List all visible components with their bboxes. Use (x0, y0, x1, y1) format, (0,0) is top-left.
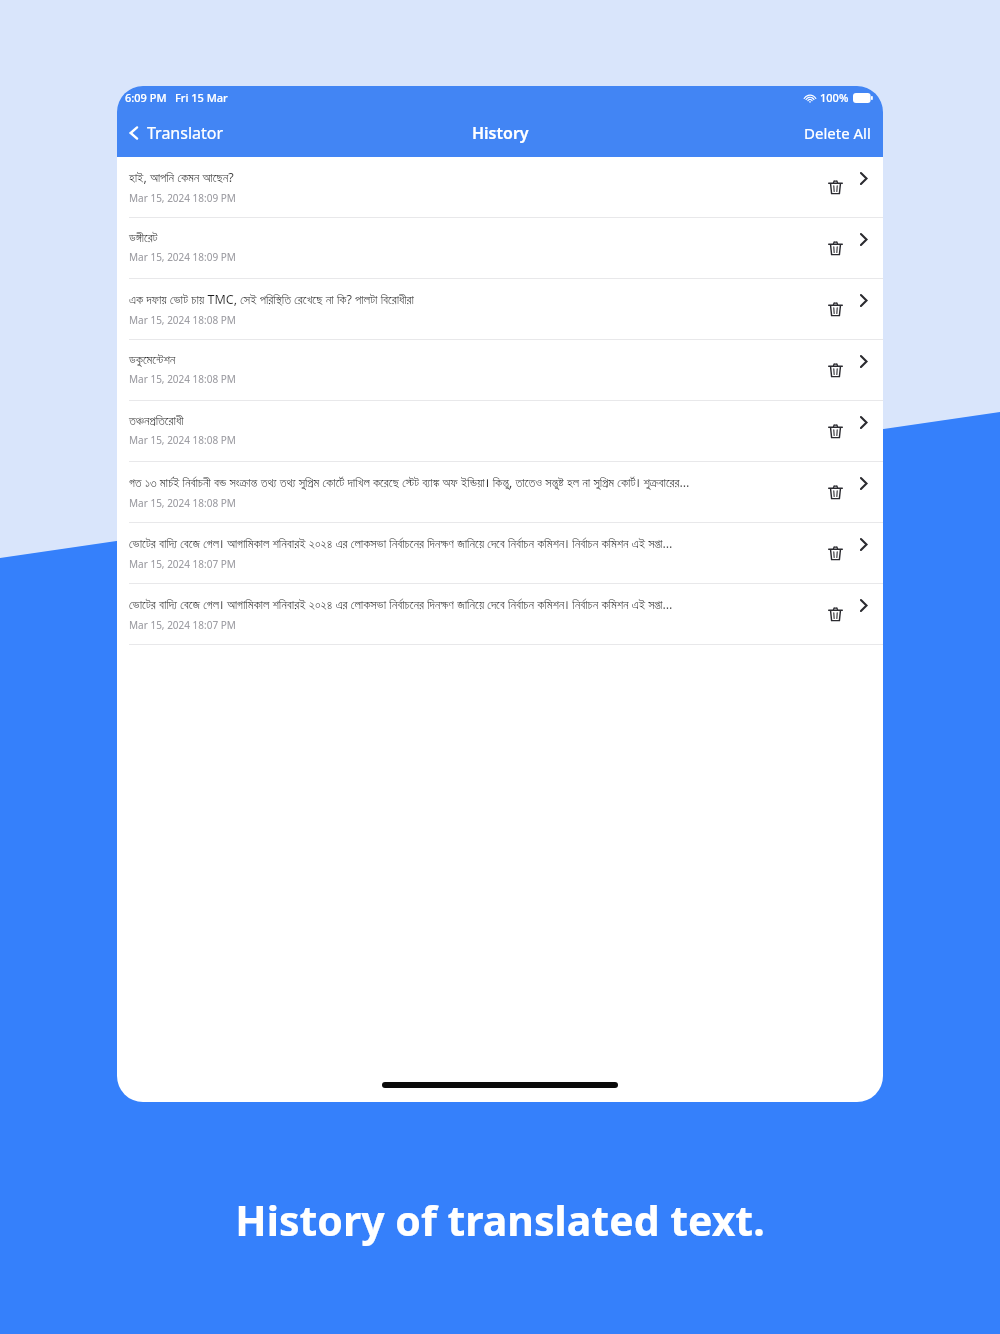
button[interactable]: Open detail (852, 231, 883, 266)
button[interactable]: Delete (819, 169, 852, 206)
staticText: Mar 15, 2024 18:09 PM (129, 250, 236, 264)
staticText: Mar 15, 2024 18:08 PM (129, 313, 236, 327)
button[interactable]: Delete (819, 352, 852, 389)
staticText: History (472, 122, 529, 144)
button[interactable]: এক দফায় ভোট চায় TMC, সেই পরিস্থিতি রেখ… (117, 279, 883, 339)
button[interactable]: গত ১৩ মার্চই নির্বাচনী বন্ড সংক্রান্ত তথ… (117, 462, 883, 522)
button[interactable]: Open detail (852, 597, 883, 632)
staticText: হাই, আপনি কেমন আছেন? (129, 169, 234, 186)
button[interactable]: তঞ্চনপ্রতিরোধী (117, 401, 883, 461)
button[interactable]: Delete (819, 535, 852, 572)
button[interactable]: Delete (819, 291, 852, 328)
button[interactable]: Delete (819, 474, 852, 511)
staticText: History of translated text. (235, 1192, 765, 1248)
button[interactable]: ডকুমেন্টেশন (117, 340, 883, 400)
button[interactable]: হাই, আপনি কেমন আছেন? (117, 157, 883, 217)
staticText: তঞ্চনপ্রতিরোধী (129, 415, 184, 428)
button[interactable]: Open detail (852, 414, 883, 449)
staticText: Mar 15, 2024 18:08 PM (129, 496, 236, 510)
staticText: ডঙ্গীরেট (129, 232, 158, 245)
button[interactable]: Translator (117, 116, 238, 150)
staticText: Mar 15, 2024 18:07 PM (129, 557, 236, 571)
staticText: Mar 15, 2024 18:08 PM (129, 372, 236, 386)
staticText: ভোটের বাদ্যি বেজে গেল। আগামিকাল শনিবারই … (129, 596, 673, 613)
staticText: গত ১৩ মার্চই নির্বাচনী বন্ড সংক্রান্ত তথ… (129, 474, 690, 491)
button[interactable]: Open detail (852, 353, 883, 388)
button[interactable]: Delete All (790, 115, 883, 151)
button[interactable]: Open detail (852, 536, 883, 571)
staticText: Translator (147, 122, 224, 144)
staticText: Mar 15, 2024 18:07 PM (129, 618, 236, 632)
button[interactable]: Delete (819, 413, 852, 450)
button[interactable]: Open detail (852, 292, 883, 327)
staticText: Delete All (804, 123, 871, 143)
button[interactable]: Delete (819, 596, 852, 633)
staticText: ডকুমেন্টেশন (129, 354, 176, 367)
button[interactable]: Delete (819, 230, 852, 267)
button[interactable]: ভোটের বাদ্যি বেজে গেল। আগামিকাল শনিবারই … (117, 523, 883, 583)
staticText: এক দফায় ভোট চায় TMC, সেই পরিস্থিতি রেখ… (129, 291, 414, 308)
staticText: Fri 15 Mar (175, 90, 228, 105)
button[interactable]: Open detail (852, 170, 883, 205)
staticText: 100% (820, 90, 849, 105)
button[interactable]: Open detail (852, 475, 883, 510)
staticText: Mar 15, 2024 18:08 PM (129, 433, 236, 447)
staticText: Mar 15, 2024 18:09 PM (129, 191, 236, 205)
button[interactable]: ভোটের বাদ্যি বেজে গেল। আগামিকাল শনিবারই … (117, 584, 883, 644)
staticText: 6:09 PM (125, 90, 167, 105)
staticText: ভোটের বাদ্যি বেজে গেল। আগামিকাল শনিবারই … (129, 535, 673, 552)
button[interactable]: ডঙ্গীরেট (117, 218, 883, 278)
